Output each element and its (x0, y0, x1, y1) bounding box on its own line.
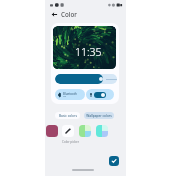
button[interactable]: Color option (96, 125, 108, 137)
staticText: Bluetooth (63, 92, 77, 96)
staticText: Color (61, 10, 77, 18)
staticText: Wallpaper colors (86, 114, 112, 118)
button[interactable]: Apply (109, 156, 119, 166)
button[interactable]: Wine color (46, 125, 58, 137)
button[interactable]: Wallpaper preview (51, 23, 119, 104)
staticText: 11:35 (75, 45, 102, 59)
button[interactable]: Back (49, 9, 60, 20)
button[interactable]: Toggle (94, 92, 106, 98)
staticText: Basic colors (59, 114, 77, 118)
button[interactable]: Color option (79, 125, 91, 137)
staticText: Color picker (62, 140, 79, 144)
button[interactable]: Basic colors (55, 112, 80, 119)
button[interactable]: Color picker (62, 125, 74, 137)
button[interactable]: Brightness (55, 74, 117, 84)
button[interactable]: Flashlight (86, 89, 114, 100)
button[interactable]: Bluetooth (55, 89, 85, 100)
button[interactable]: Wallpaper colors (84, 112, 114, 119)
staticText: On (63, 95, 67, 98)
